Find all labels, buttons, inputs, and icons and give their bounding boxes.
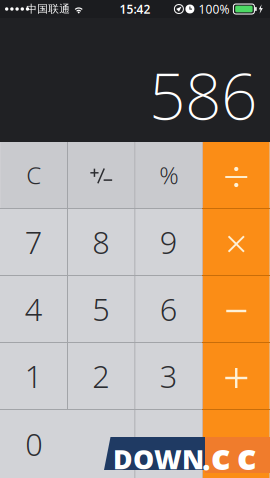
staticText: 8 xyxy=(92,222,110,262)
staticText: 100% xyxy=(198,1,229,17)
button[interactable]: C xyxy=(0,142,67,208)
staticText: 3 xyxy=(160,356,178,396)
staticText: 15:42 xyxy=(119,1,150,17)
staticText: 中国联通 xyxy=(26,2,70,15)
staticText: 6 xyxy=(160,289,178,329)
staticText: c xyxy=(237,432,256,478)
staticText: 586 xyxy=(149,52,257,137)
button[interactable]: Subtract xyxy=(203,276,269,342)
staticText: DOWN xyxy=(113,441,204,477)
staticText: % xyxy=(159,159,178,191)
button[interactable]: 7 xyxy=(0,209,67,275)
button[interactable]: Toggle sign xyxy=(68,142,134,208)
button[interactable]: 4 xyxy=(0,276,67,342)
staticText: 0 xyxy=(25,424,43,464)
staticText: 9 xyxy=(160,222,178,262)
staticText: 7 xyxy=(25,222,43,262)
staticText: 2 xyxy=(92,356,110,396)
staticText: . xyxy=(202,439,210,478)
button[interactable]: 8 xyxy=(68,209,134,275)
button[interactable]: Multiply xyxy=(203,209,269,275)
staticText: c xyxy=(211,432,230,478)
staticText: 4 xyxy=(25,289,43,329)
button[interactable]: 6 xyxy=(135,276,202,342)
staticText: 1 xyxy=(25,356,43,396)
staticText: . xyxy=(165,423,172,463)
button[interactable]: 3 xyxy=(135,343,202,409)
button[interactable]: 5 xyxy=(68,276,134,342)
button[interactable]: Divide xyxy=(203,142,269,208)
button[interactable]: 9 xyxy=(135,209,202,275)
button[interactable]: Add xyxy=(203,343,269,409)
button[interactable]: Equals xyxy=(203,410,269,478)
button[interactable]: % xyxy=(135,142,202,208)
button[interactable]: . xyxy=(135,410,202,478)
staticText: 5 xyxy=(92,289,110,329)
button[interactable]: 0 xyxy=(0,410,134,478)
button[interactable]: 1 xyxy=(0,343,67,409)
staticText: C xyxy=(26,159,41,191)
button[interactable]: 2 xyxy=(68,343,134,409)
